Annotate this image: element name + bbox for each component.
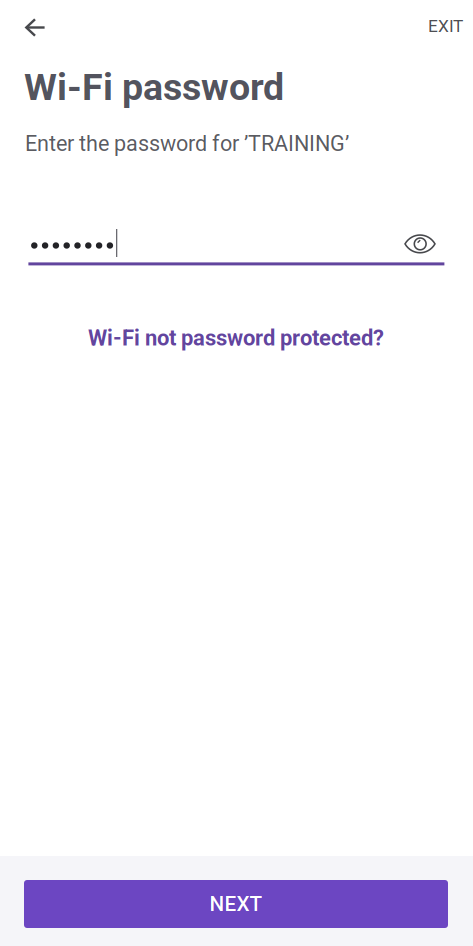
button[interactable]: EXIT [407,4,473,52]
button[interactable]: NEXT [24,880,448,928]
staticText: NEXT [209,892,262,916]
staticText: Enter the password for ’TRAINING’ [25,131,349,156]
staticText: Wi-Fi not password protected? [88,325,384,351]
button[interactable]: Wi-Fi not password protected? [88,325,384,351]
button[interactable]: Show password [396,222,444,266]
button[interactable]: Back [12,4,60,52]
staticText: Wi-Fi password [24,65,284,109]
secureTextField[interactable]: •••••••• [28,222,444,267]
staticText: EXIT [428,16,463,36]
